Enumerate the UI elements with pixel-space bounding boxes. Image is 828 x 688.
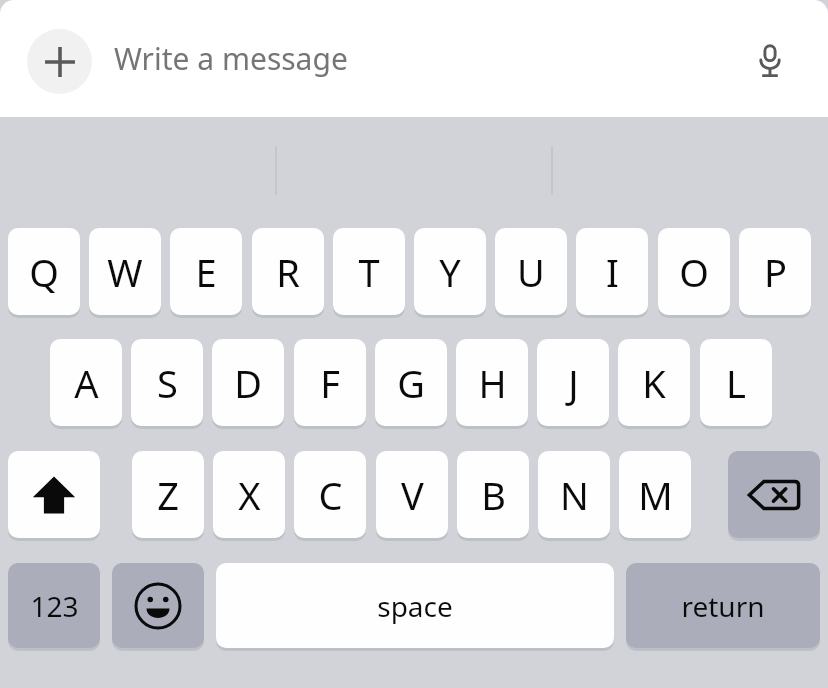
button[interactable]: X [213, 451, 285, 538]
staticText: A [74, 357, 99, 409]
button[interactable]: B [457, 451, 529, 538]
staticText: C [318, 469, 343, 521]
staticText: Write a message [114, 38, 348, 79]
button[interactable]: D [212, 339, 284, 426]
button[interactable]: Emoji [112, 563, 204, 648]
button[interactable]: K [618, 339, 690, 426]
button[interactable]: space [216, 563, 614, 648]
button[interactable]: T [333, 228, 405, 315]
staticText: D [234, 357, 262, 409]
staticText: Q [29, 246, 59, 298]
staticText: T [358, 246, 380, 298]
button[interactable]: return [626, 563, 820, 648]
staticText: W [107, 246, 143, 298]
button[interactable]: F [294, 339, 366, 426]
staticText: I [606, 246, 619, 298]
button[interactable]: W [89, 228, 161, 315]
button[interactable]: A [50, 339, 122, 426]
button[interactable]: Backspace [728, 451, 820, 538]
staticText: 123 [30, 587, 79, 625]
button[interactable]: P [739, 228, 811, 315]
staticText: F [320, 357, 340, 409]
button[interactable]: S [131, 339, 203, 426]
staticText: E [195, 246, 217, 298]
button[interactable]: R [252, 228, 324, 315]
button[interactable]: G [375, 339, 447, 426]
button[interactable]: N [538, 451, 610, 538]
staticText: B [481, 469, 506, 521]
button[interactable]: V [376, 451, 448, 538]
button[interactable]: J [537, 339, 609, 426]
button[interactable]: Write a message [114, 0, 714, 117]
button[interactable]: O [658, 228, 730, 315]
staticText: return [681, 587, 765, 625]
button[interactable]: L [700, 339, 772, 426]
staticText: L [726, 357, 746, 409]
staticText: R [276, 246, 300, 298]
button[interactable]: M [619, 451, 691, 538]
button[interactable]: U [495, 228, 567, 315]
staticText: G [397, 357, 425, 409]
staticText: Y [439, 246, 461, 298]
button[interactable]: Add attachment [27, 29, 92, 94]
staticText: P [764, 246, 787, 298]
staticText: Z [157, 469, 179, 521]
button[interactable]: Shift [8, 451, 100, 538]
staticText: H [478, 357, 507, 409]
staticText: U [517, 246, 545, 298]
button[interactable]: Z [132, 451, 204, 538]
button[interactable]: 123 [8, 563, 100, 648]
staticText: M [638, 469, 673, 521]
button[interactable]: I [576, 228, 648, 315]
button[interactable]: Q [8, 228, 80, 315]
button[interactable]: C [294, 451, 366, 538]
staticText: S [157, 357, 178, 409]
staticText: X [238, 469, 261, 521]
staticText: K [642, 357, 666, 409]
staticText: J [568, 357, 579, 409]
staticText: O [679, 246, 709, 298]
button[interactable]: E [170, 228, 242, 315]
button[interactable]: H [456, 339, 528, 426]
staticText: N [560, 469, 589, 521]
staticText: space [377, 587, 453, 625]
staticText: V [401, 469, 424, 521]
button[interactable]: Y [414, 228, 486, 315]
button[interactable]: Voice input [742, 33, 798, 89]
